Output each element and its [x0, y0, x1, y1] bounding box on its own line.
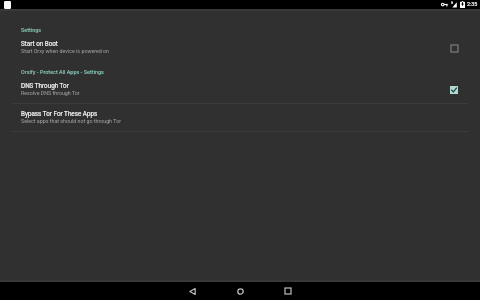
staticText: Settings [21, 27, 42, 33]
staticText: Orxify - Protect All Apps - Settings [21, 69, 104, 75]
staticText: Bypass Tor For These Apps [21, 110, 98, 117]
button[interactable]: Start on Boot [0, 40, 480, 61]
staticText: Select apps that should not go through T… [21, 118, 121, 124]
button[interactable]: Recent apps [282, 285, 294, 297]
staticText: DNS Through Tor [21, 82, 69, 89]
button[interactable]: Home [234, 285, 246, 297]
button[interactable]: Bypass Tor For These Apps [0, 110, 480, 131]
button[interactable]: DNS Through Tor [0, 82, 480, 103]
button[interactable]: Enabled [447, 83, 461, 97]
button[interactable]: Back [186, 285, 198, 297]
staticText: 2:35 [467, 1, 478, 7]
staticText: Resolve DNS through Tor [21, 90, 80, 96]
staticText: Start on Boot [21, 40, 58, 47]
staticText: Start Orxy when device is powered on [21, 48, 109, 54]
button[interactable]: Disabled [447, 41, 461, 55]
